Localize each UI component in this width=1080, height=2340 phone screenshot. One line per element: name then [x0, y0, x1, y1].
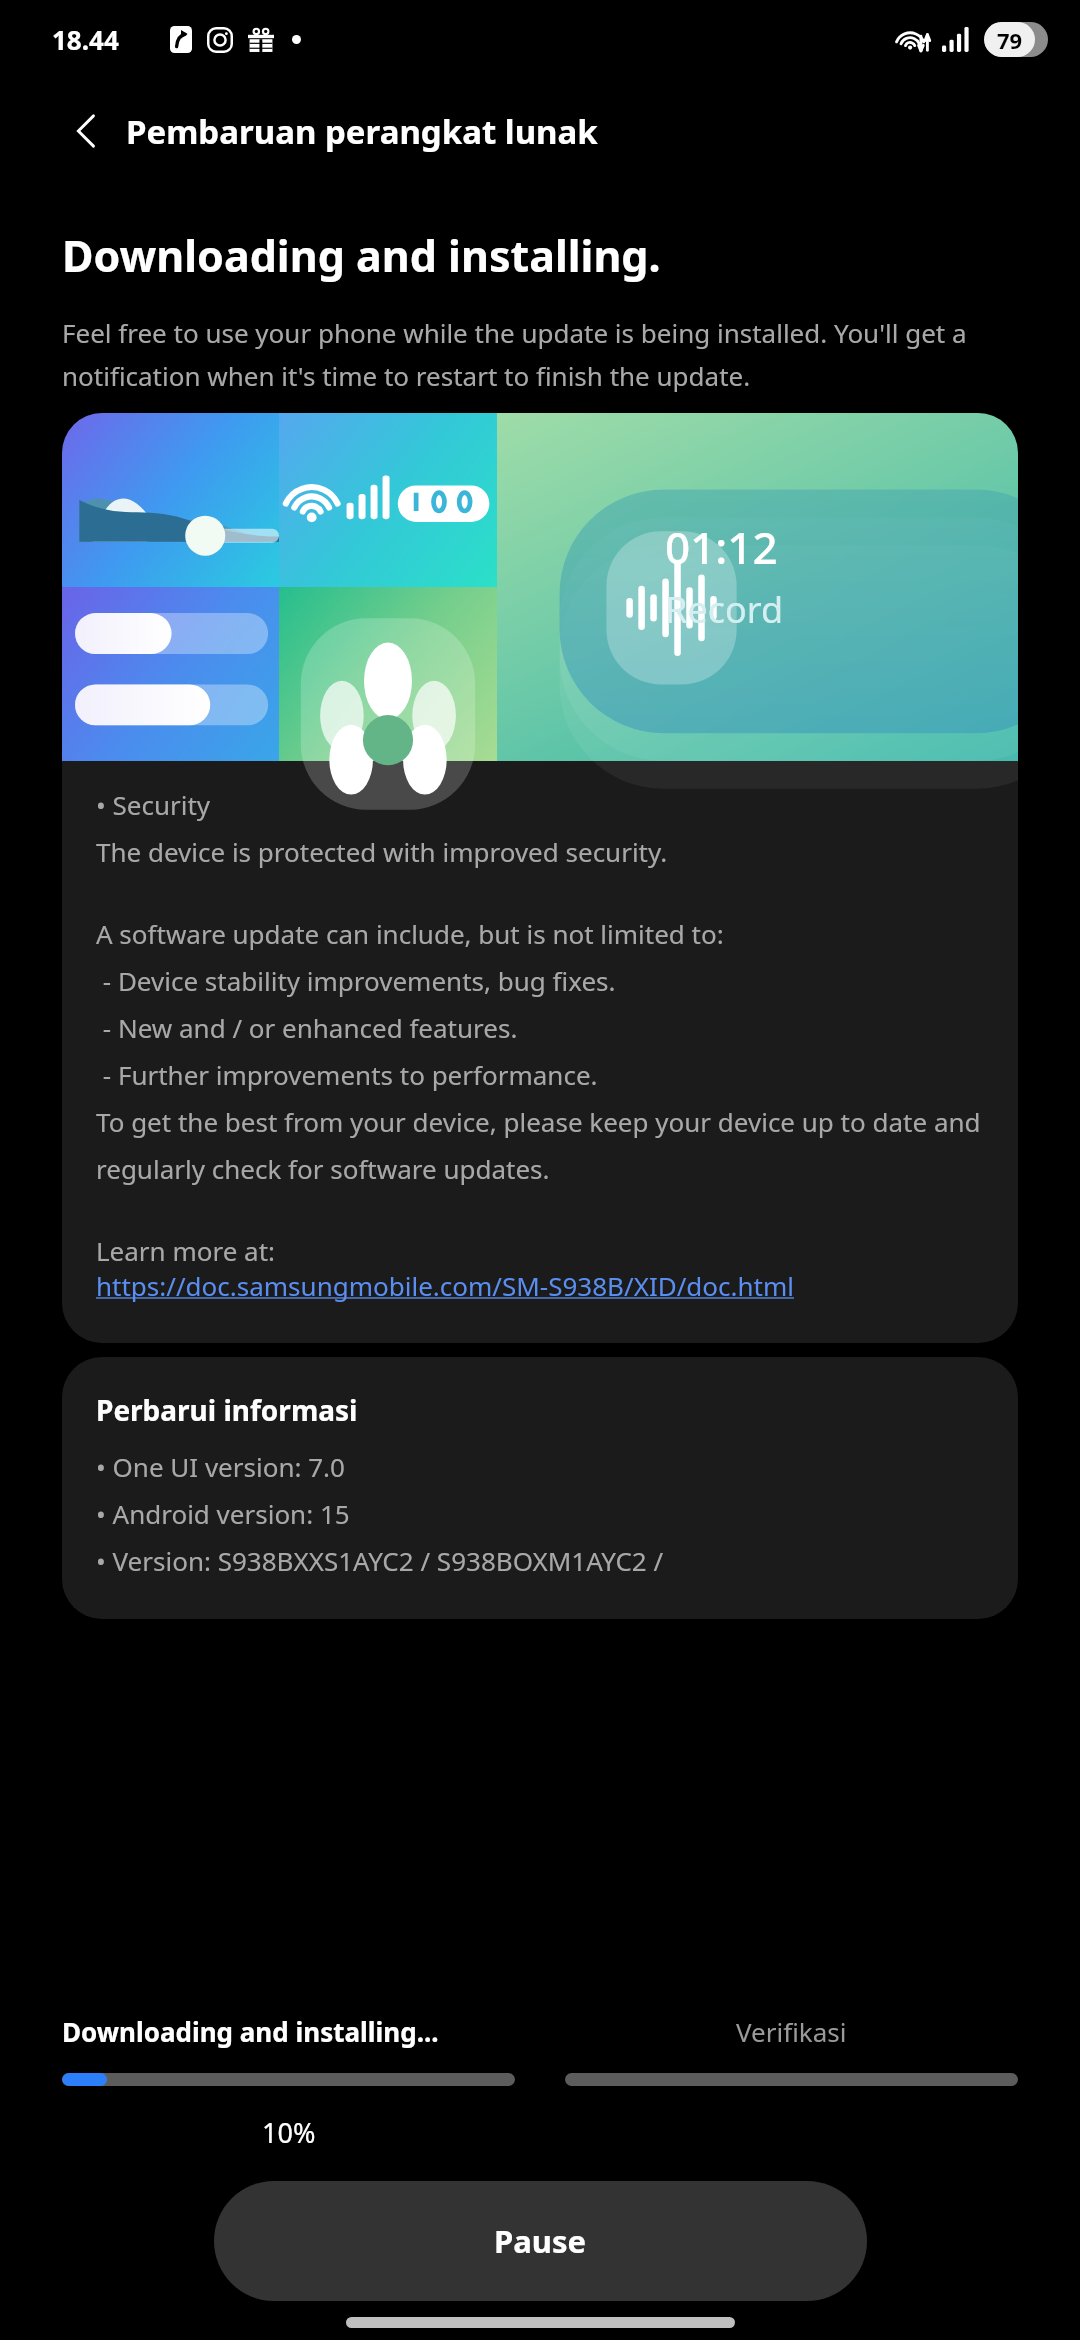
staticText: Pause: [494, 2220, 587, 2262]
button[interactable]: Back: [58, 102, 116, 160]
staticText: A software update can include, but is no…: [96, 916, 990, 1187]
staticText: Feel free to use your phone while the up…: [62, 315, 1026, 393]
button[interactable]: https://doc.samsungmobile.com/SM-S938B/X…: [96, 1268, 794, 1303]
staticText: Downloading and installing...: [62, 2014, 439, 2049]
staticText: 79: [997, 25, 1023, 55]
button[interactable]: Pause: [214, 2181, 867, 2301]
staticText: Downloading and installing.: [62, 226, 661, 285]
staticText: 01:12: [665, 517, 778, 577]
staticText: Verifikasi: [736, 2014, 847, 2049]
staticText: Pembaruan perangkat lunak: [126, 109, 598, 154]
staticText: Perbarui informasi: [96, 1391, 358, 1429]
staticText: Learn more at:: [96, 1233, 276, 1268]
staticText: 10%: [262, 2114, 316, 2151]
staticText: • One UI version: 7.0 • Android version:…: [96, 1449, 664, 1579]
staticText: • Security The device is protected with …: [96, 787, 668, 870]
staticText: Record: [665, 585, 784, 634]
staticText: 18.44: [52, 22, 119, 57]
